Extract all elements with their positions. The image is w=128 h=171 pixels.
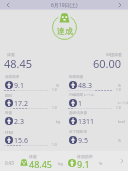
staticText: 1.0 [116,106,121,110]
staticText: % [99,161,103,166]
staticText: 1.0 [52,106,57,110]
staticText: 17.2 [14,99,28,109]
staticText: 48.45 [4,56,33,71]
staticText: 除脂肪量 [69,75,84,80]
staticText: kcal [118,119,125,124]
staticText: 60.00 [93,56,122,71]
staticText: 体脂肪率 [77,154,93,159]
staticText: 15.6 [14,136,28,146]
staticText: 1 [78,99,83,109]
staticText: 骨量 [5,111,13,116]
staticText: 9.5 [78,136,88,146]
staticText: 9.1 [14,81,24,91]
staticText: kg [56,119,61,124]
staticText: 内臓脂肪レベル [69,93,95,98]
button[interactable]: BMI [4,91,61,109]
staticText: 48.45 [29,158,53,170]
staticText: 9.1 [77,158,90,170]
staticText: 1.0 [52,143,57,147]
button[interactable]: 基礎代謝量 [68,109,123,127]
staticText: 体重 [29,154,37,159]
staticText: 1311 [78,117,95,127]
staticText: 0:43 [5,160,14,166]
button[interactable]: Next day [112,0,128,9]
staticText: % [118,138,121,143]
staticText: 基礎代謝量 [69,111,87,116]
staticText: 1.0 [116,88,121,92]
staticText: 体脂肪率 [5,75,20,80]
button[interactable]: Previous day [0,0,16,9]
staticText: kg [58,161,63,166]
button[interactable]: 骨量 [4,109,61,127]
staticText: 6月19日(土) [51,2,78,9]
staticText: 体重 [7,52,15,57]
staticText: FFMI [5,130,14,135]
staticText: 48.3 [78,81,92,91]
button[interactable]: Goal achieved [52,15,77,40]
button[interactable]: 体脂肪率 [4,73,61,91]
staticText: 皮下脂肪率 [69,130,87,135]
staticText: 達成 [57,26,73,36]
staticText: 1.0 [52,88,57,92]
button[interactable]: 除脂肪量 [68,73,123,91]
button[interactable]: FFMI [4,128,61,146]
staticText: レベル [118,101,128,106]
button[interactable]: 内臓脂肪レベル [68,91,123,109]
staticText: % [118,83,121,88]
button[interactable]: 0:43 [0,151,128,171]
staticText: % [56,83,59,88]
button[interactable]: 皮下脂肪率 [68,128,123,146]
button[interactable]: More details [116,151,128,171]
staticText: 目標体重 [106,52,122,57]
staticText: BMI [5,93,12,98]
staticText: 2.3 [14,117,24,127]
